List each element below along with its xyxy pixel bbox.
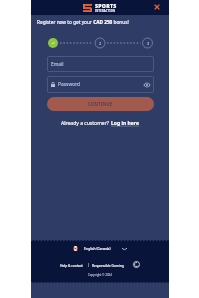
staticText: Email: [51, 61, 64, 68]
staticText: 2: [99, 41, 102, 46]
staticText: Copyright © 2024: [88, 273, 112, 277]
button[interactable]: Close: [152, 2, 162, 12]
staticText: CONTINUE: [88, 101, 113, 107]
staticText: Register now to get your CAD 250 bonus!: [37, 19, 129, 25]
button[interactable]: Help & contact: [60, 263, 83, 267]
button[interactable]: English (Canada): [73, 246, 127, 251]
button[interactable]: Email: [47, 56, 154, 72]
button[interactable]: Log in here: [111, 120, 140, 127]
staticText: Already a customer?: [61, 120, 111, 127]
button[interactable]: Responsible Gaming: [92, 263, 124, 267]
staticText: INTERACTION: [95, 9, 116, 13]
staticText: English (Canada): [84, 246, 111, 251]
staticText: 3: [147, 41, 150, 46]
button[interactable]: Show password: [143, 81, 150, 88]
button[interactable]: Password: [47, 76, 154, 93]
staticText: Password: [58, 81, 81, 88]
button[interactable]: CONTINUE: [47, 97, 154, 111]
staticText: SPORTS: [95, 2, 117, 9]
